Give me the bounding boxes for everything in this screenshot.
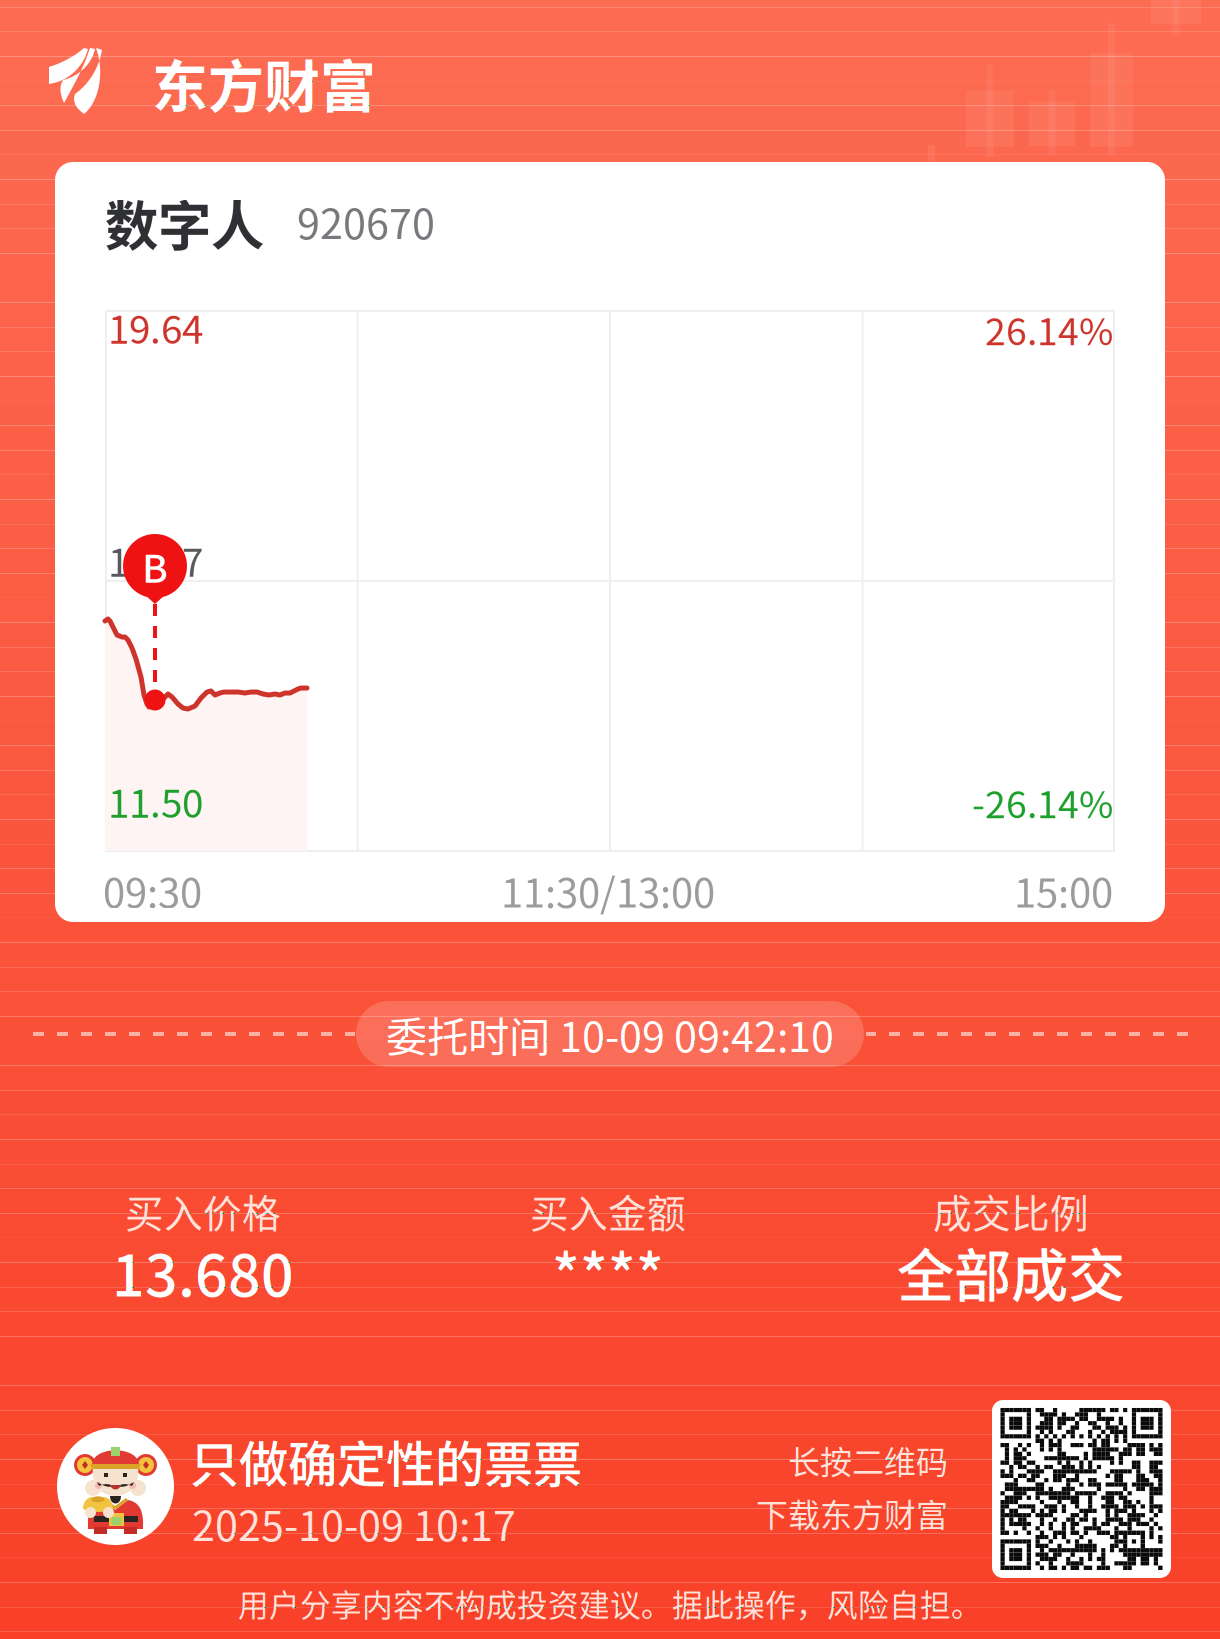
staticText: 09:30 bbox=[103, 861, 202, 919]
staticText: 15:00 bbox=[1014, 861, 1113, 919]
staticText: 全部成交 bbox=[897, 1230, 1125, 1313]
staticText: 只做确定性的票票 bbox=[190, 1425, 582, 1496]
staticText: 用户分享内容不构成投资建议。据此操作，风险自担。 bbox=[238, 1581, 982, 1625]
staticText: 数字人 bbox=[105, 184, 264, 261]
staticText: 920670 bbox=[297, 191, 435, 251]
staticText: 13.680 bbox=[112, 1230, 294, 1313]
staticText: 下载东方财富 bbox=[756, 1490, 948, 1536]
staticText: -26.14% bbox=[972, 775, 1113, 829]
staticText: 买入金额 bbox=[530, 1183, 686, 1239]
staticText: 13.07 bbox=[108, 532, 203, 588]
staticText: **** bbox=[552, 1230, 664, 1313]
staticText: 11:30/13:00 bbox=[501, 861, 715, 919]
staticText: 长按二维码 bbox=[788, 1437, 948, 1483]
staticText: 买入价格 bbox=[125, 1183, 281, 1239]
staticText: 委托时间 10-09 09:42:10 bbox=[386, 1004, 834, 1064]
staticText: 2025-10-09 10:17 bbox=[192, 1493, 516, 1553]
staticText: 11.50 bbox=[108, 773, 203, 829]
staticText: 东方财富 bbox=[152, 42, 376, 123]
staticText: B bbox=[142, 538, 168, 594]
staticText: 19.64 bbox=[108, 299, 203, 355]
staticText: 26.14% bbox=[985, 302, 1113, 356]
staticText: 成交比例 bbox=[933, 1183, 1089, 1239]
